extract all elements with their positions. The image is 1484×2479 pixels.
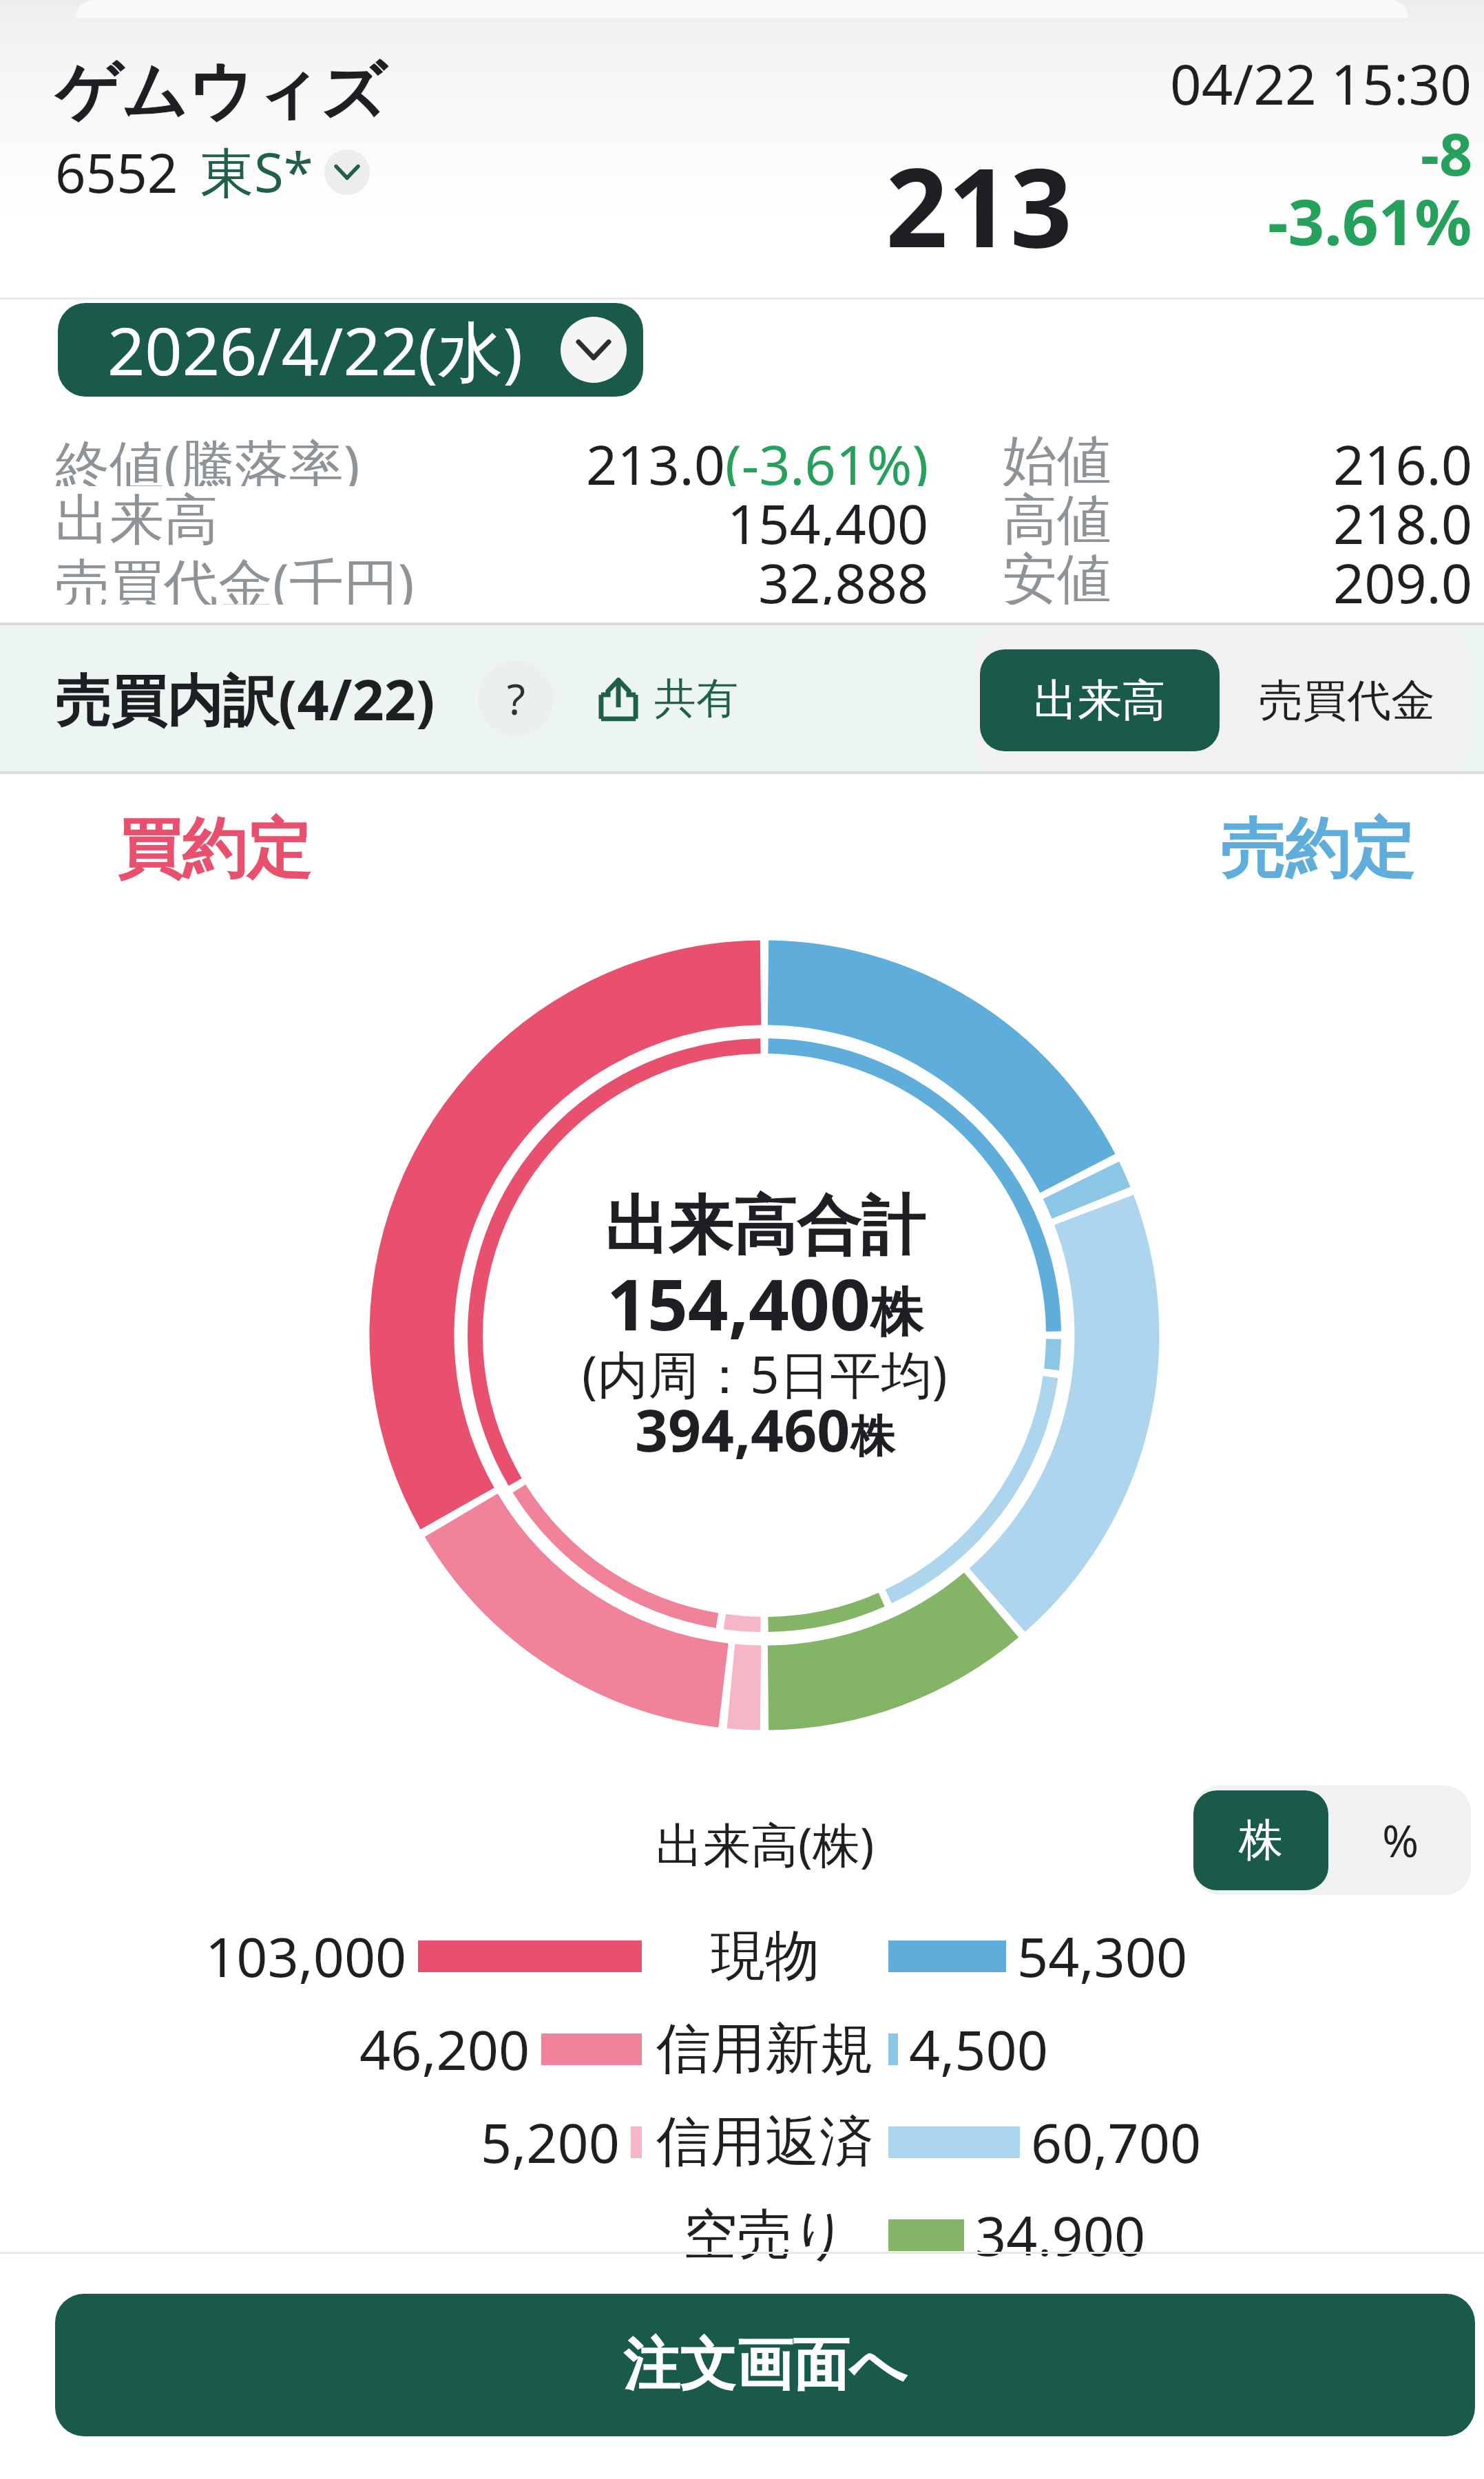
button[interactable]: 出来高 xyxy=(980,649,1220,751)
staticText: (内周：5日平均) xyxy=(582,1339,948,1408)
staticText: -8 xyxy=(1421,114,1472,192)
staticText: 売約定 xyxy=(1220,808,1414,890)
staticText: 213.0 xyxy=(586,427,725,486)
staticText: 4,500 xyxy=(909,2012,1048,2086)
button[interactable]: 共有 xyxy=(592,665,738,732)
staticText: -3.61% xyxy=(1268,178,1472,264)
staticText: 終値(騰落率) xyxy=(55,427,360,486)
staticText: 32,888 xyxy=(758,545,929,605)
staticText: 103,000 xyxy=(205,1919,407,1994)
staticText: % xyxy=(1382,1810,1419,1870)
staticText: 154,400 xyxy=(607,1255,870,1351)
button[interactable]: Market selector xyxy=(324,149,370,195)
staticText: 213 xyxy=(886,131,1073,279)
staticText: 216.0 xyxy=(1333,427,1472,486)
staticText: 6552 xyxy=(55,136,178,209)
staticText: 信用新規 xyxy=(656,2015,874,2084)
staticText: 54,300 xyxy=(1017,1919,1188,1994)
staticText: 394,460 xyxy=(635,1390,850,1468)
staticText: 04/22 15:30 xyxy=(1170,45,1472,121)
staticText: 出来高 xyxy=(1034,673,1166,729)
staticText: 始値 xyxy=(1003,427,1111,486)
staticText: 共有 xyxy=(654,672,738,725)
staticText: 出来高 xyxy=(55,486,218,545)
staticText: 2026/4/22(水) xyxy=(107,305,523,395)
button[interactable]: 2026/4/22(水) xyxy=(58,303,643,397)
staticText: 60,700 xyxy=(1031,2105,1202,2179)
staticText: 売買内訳(4/22) xyxy=(55,660,435,737)
staticText: 売買代金(千円) xyxy=(55,545,415,605)
staticText: 株 xyxy=(870,1280,923,1346)
button[interactable]: 株 xyxy=(1193,1790,1328,1890)
staticText: 34.900 xyxy=(975,2198,1146,2272)
staticText: 売買代金 xyxy=(1259,673,1435,729)
staticText: ? xyxy=(507,669,525,727)
staticText: 209.0 xyxy=(1333,545,1472,605)
staticText: 信用返済 xyxy=(656,2108,874,2177)
staticText: 出来高(株) xyxy=(656,1811,875,1876)
button[interactable]: % xyxy=(1333,1790,1468,1890)
staticText: 注文画面へ xyxy=(623,2330,907,2400)
staticText: 空売り xyxy=(683,2201,848,2270)
staticText: 株 xyxy=(850,1409,895,1465)
staticText: 5,200 xyxy=(481,2105,620,2179)
button[interactable]: Help xyxy=(478,660,554,736)
staticText: 安値 xyxy=(1003,545,1111,605)
staticText: 買約定 xyxy=(117,808,311,890)
button[interactable]: 売買代金 xyxy=(1233,649,1461,751)
staticText: (-3.61%) xyxy=(725,427,929,486)
button[interactable]: 注文画面へ xyxy=(55,2294,1475,2436)
staticText: 46,200 xyxy=(359,2012,530,2086)
staticText: 東S* xyxy=(200,135,313,209)
staticText: ゲムウィズ xyxy=(55,51,387,132)
staticText: 株 xyxy=(1239,1812,1283,1868)
staticText: 154,400 xyxy=(727,486,929,545)
staticText: 高値 xyxy=(1003,486,1111,545)
staticText: 現物 xyxy=(711,1922,819,1991)
staticText: 218.0 xyxy=(1333,486,1472,545)
staticText: 出来高合計 xyxy=(605,1186,925,1266)
